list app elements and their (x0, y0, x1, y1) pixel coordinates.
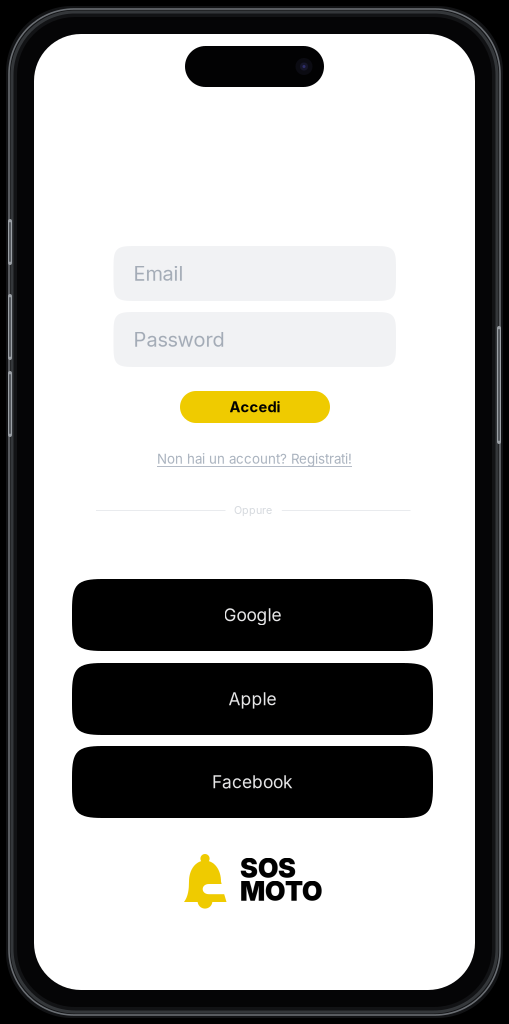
staticText: Oppure (234, 503, 272, 516)
staticText: Facebook (212, 771, 293, 792)
staticText: Email (133, 261, 183, 286)
staticText: Non hai un account? Registrati! (157, 451, 352, 467)
staticText: MOTO (240, 875, 322, 907)
button[interactable]: Facebook (72, 746, 433, 818)
button[interactable]: Accedi (180, 391, 330, 423)
staticText: SOS (240, 852, 296, 884)
button[interactable]: Non hai un account? Registrati! (34, 449, 475, 469)
staticText: Password (133, 327, 224, 352)
button[interactable]: Google (72, 579, 433, 651)
staticText: Accedi (229, 398, 280, 416)
staticText: Google (223, 604, 281, 625)
button[interactable]: Apple (72, 663, 433, 735)
staticText: Apple (228, 688, 276, 709)
